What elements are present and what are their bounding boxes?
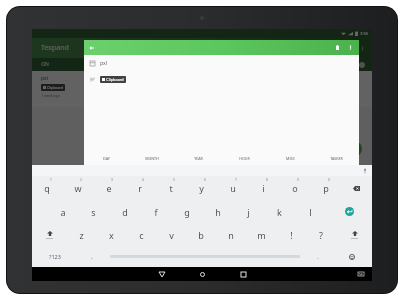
staticText: d (122, 206, 128, 218)
staticText: z (79, 229, 84, 241)
staticText: m (257, 229, 266, 241)
staticText: a (60, 206, 66, 218)
staticText: 0 (328, 178, 330, 182)
staticText: r (138, 182, 142, 194)
button[interactable]: 1 (32, 176, 62, 200)
staticText: DAY (103, 156, 110, 161)
button[interactable]: f (140, 200, 171, 223)
staticText: 5 (173, 178, 175, 182)
button[interactable]: Sort (335, 45, 342, 52)
button[interactable]: Space (106, 246, 304, 267)
button[interactable]: TASKER (313, 152, 359, 165)
button[interactable]: Hide keyboard (357, 270, 365, 278)
staticText: h (215, 206, 221, 218)
staticText: ? (319, 229, 323, 241)
staticText: , (91, 253, 93, 260)
button[interactable]: d (109, 200, 140, 223)
staticText: l (309, 206, 312, 218)
button[interactable]: YEAR (175, 152, 221, 165)
button[interactable]: Shift right (336, 223, 372, 246)
button[interactable]: 9 (279, 176, 310, 200)
staticText: b (198, 229, 204, 241)
button[interactable]: ? (306, 223, 336, 246)
button[interactable]: MISC (267, 152, 313, 165)
staticText: ?123 (49, 253, 61, 260)
button[interactable]: pxl (84, 55, 359, 71)
staticText: . (317, 253, 319, 260)
button[interactable]: m (246, 223, 276, 246)
staticText: g (184, 206, 190, 218)
button[interactable]: 8 (248, 176, 279, 200)
button[interactable]: Delete (334, 44, 341, 51)
staticText: 9 (297, 178, 299, 182)
button[interactable]: j (233, 200, 264, 223)
button[interactable]: ! (276, 223, 306, 246)
button[interactable]: 6 (186, 176, 217, 200)
button[interactable]: ?123 (32, 246, 78, 267)
button[interactable]: s (78, 200, 109, 223)
button[interactable]: Recents (238, 269, 249, 280)
button[interactable]: k (264, 200, 295, 223)
staticText: o (292, 182, 298, 194)
staticText: TASKER (330, 156, 343, 161)
button[interactable]: HOUR (221, 152, 267, 165)
button[interactable]: b (186, 223, 216, 246)
button[interactable]: Backspace (341, 176, 372, 200)
staticText: q (44, 182, 50, 194)
staticText: 3 (111, 178, 113, 182)
button[interactable]: DAY (84, 152, 129, 165)
button[interactable]: 3 (93, 176, 124, 200)
button[interactable]: v (156, 223, 186, 246)
button[interactable]: x (96, 223, 126, 246)
staticText: Clipboard (47, 85, 63, 90)
button[interactable]: n (216, 223, 246, 246)
staticText: c (139, 229, 144, 241)
staticText: x (109, 229, 114, 241)
staticText: 8 (266, 178, 268, 182)
button[interactable]: 7 (217, 176, 248, 200)
button[interactable]: More options (347, 44, 354, 51)
button[interactable]: Back (88, 44, 96, 52)
button[interactable]: 4 (124, 176, 155, 200)
staticText: k (277, 206, 282, 218)
button[interactable]: 0 (310, 176, 341, 200)
button[interactable]: a (47, 200, 78, 223)
staticText: f (154, 206, 158, 218)
button[interactable]: Voice input (362, 168, 368, 174)
staticText: MONTH (145, 156, 159, 161)
staticText: YEAR (194, 156, 203, 161)
staticText: pxl (100, 60, 107, 67)
staticText: 4 (142, 178, 144, 182)
button[interactable]: g (171, 200, 202, 223)
button[interactable]: Clipboard (84, 71, 359, 88)
button[interactable]: 5 (155, 176, 186, 200)
button[interactable]: Shift (32, 223, 67, 246)
button[interactable]: z (67, 223, 96, 246)
button[interactable]: Add (346, 141, 362, 157)
staticText: pxl (41, 75, 48, 82)
staticText: s (91, 206, 96, 218)
button[interactable]: h (202, 200, 233, 223)
button[interactable]: pxl (32, 71, 372, 107)
staticText: p (323, 182, 329, 194)
button[interactable]: Enter (326, 200, 372, 223)
button[interactable]: Home (197, 269, 208, 280)
button[interactable]: 2 (62, 176, 93, 200)
button[interactable]: c (126, 223, 156, 246)
staticText: HOUR (239, 156, 250, 161)
button[interactable]: More options (359, 45, 366, 52)
button[interactable]: l (295, 200, 326, 223)
staticText: u (230, 182, 236, 194)
button[interactable]: Expand (347, 45, 354, 52)
staticText: 1 (50, 178, 52, 182)
staticText: i (262, 182, 265, 194)
button[interactable]: Emoji (332, 246, 372, 267)
staticText: 2 (80, 178, 82, 182)
button[interactable]: MONTH (129, 152, 175, 165)
staticText: t (169, 182, 173, 194)
button[interactable]: Back (156, 269, 167, 280)
